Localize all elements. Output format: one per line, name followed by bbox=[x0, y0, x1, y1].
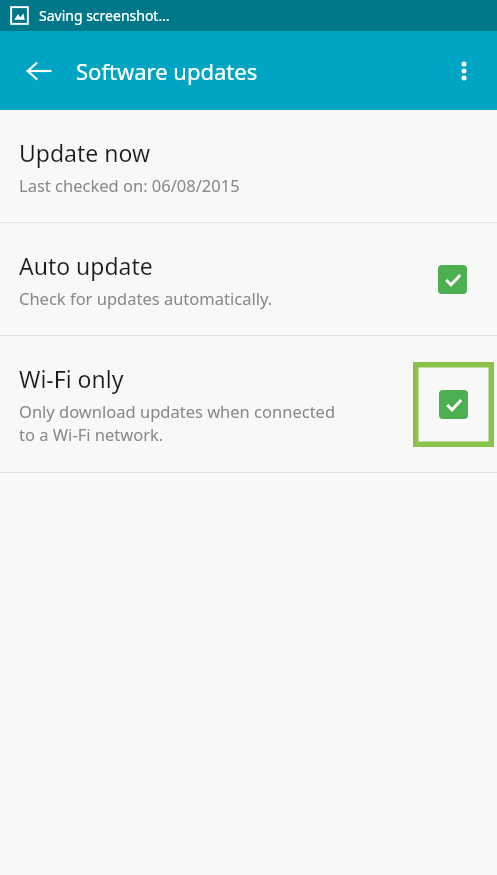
staticText: Saving screenshot… bbox=[39, 6, 170, 25]
button[interactable]: More options bbox=[437, 44, 491, 98]
staticText: Software updates bbox=[76, 56, 258, 86]
staticText: Check for updates automatically. bbox=[19, 287, 273, 309]
staticText: Auto update bbox=[19, 250, 153, 281]
staticText: Update now bbox=[19, 137, 151, 168]
staticText: Only download updates when connected to … bbox=[19, 400, 336, 446]
button[interactable]: Wi-Fi only bbox=[0, 336, 497, 472]
button[interactable]: Back bbox=[10, 42, 68, 100]
button[interactable]: Auto update bbox=[0, 223, 497, 335]
button[interactable]: Checkbox, checked bbox=[439, 390, 468, 419]
staticText: Wi-Fi only bbox=[19, 363, 124, 394]
staticText: Last checked on: 06/08/2015 bbox=[19, 174, 240, 196]
button[interactable]: Checkbox, checked bbox=[438, 265, 467, 294]
button[interactable]: Update now bbox=[0, 110, 497, 222]
